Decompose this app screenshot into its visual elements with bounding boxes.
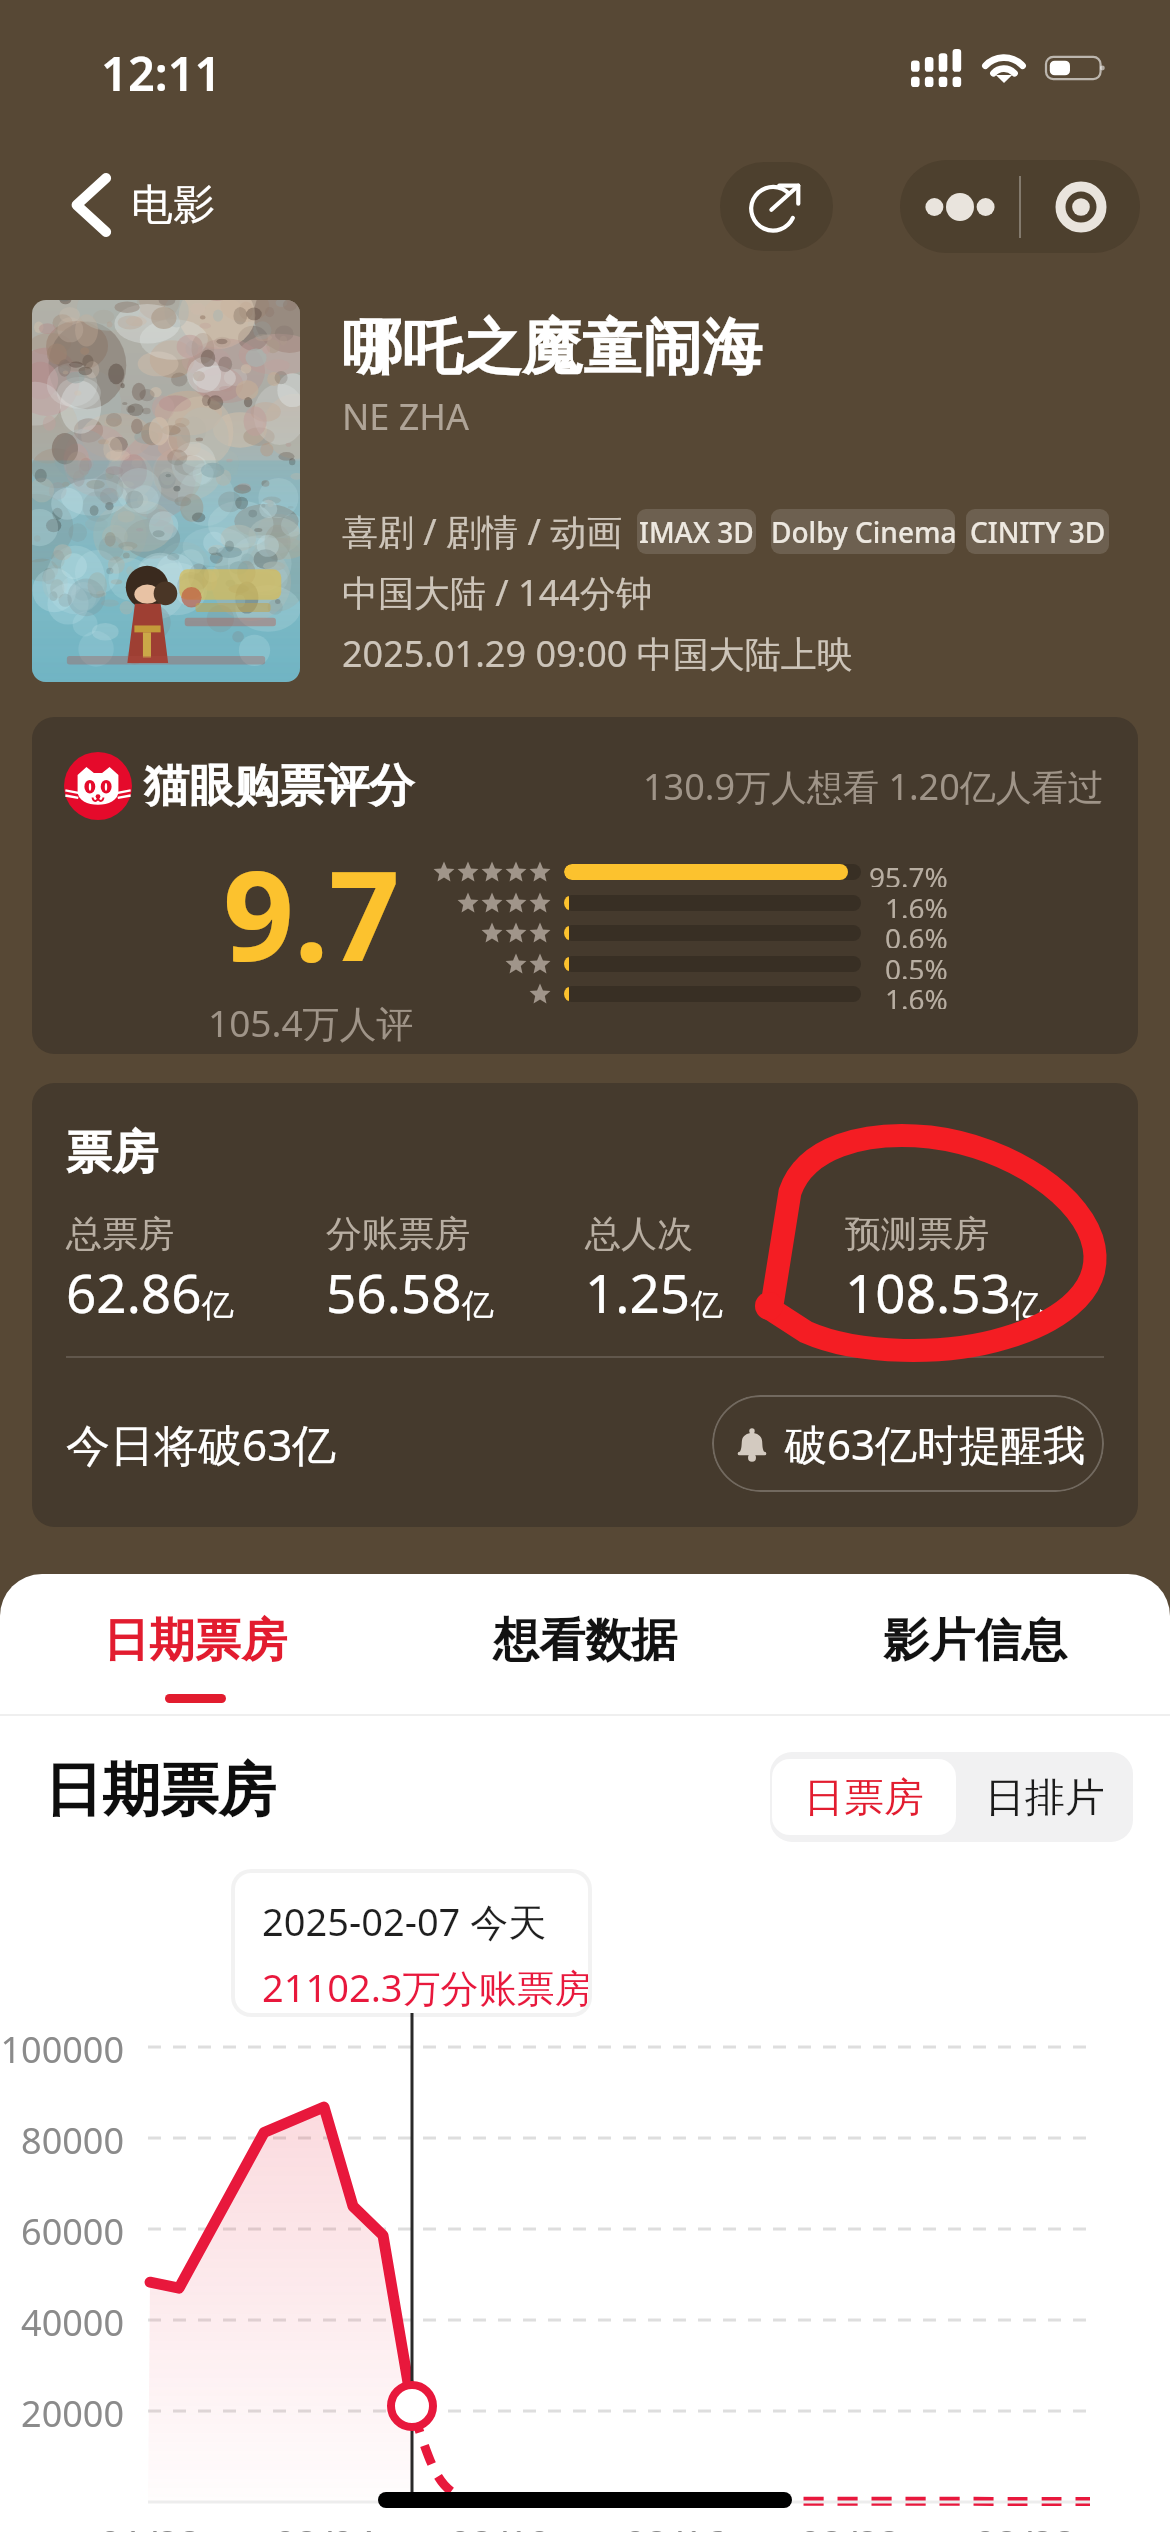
other: Back — [73, 175, 109, 235]
staticText: 日排片 — [985, 1772, 1105, 1822]
staticText: 日票房 — [804, 1772, 924, 1822]
staticText: 20000 — [0, 2389, 124, 2438]
staticText: 9.7 — [223, 828, 400, 997]
staticText: 日期票房 — [44, 1754, 276, 1827]
staticText: 破63亿时提醒我 — [785, 1415, 1086, 1472]
staticText: 总人次 — [585, 1211, 693, 1256]
button[interactable]: 日排片 — [956, 1759, 1133, 1835]
button[interactable]: More options — [900, 160, 1019, 253]
staticText: 1.6% — [885, 889, 948, 918]
staticText: 60000 — [0, 2207, 124, 2256]
staticText: 2025-02-07 今天 — [262, 1895, 547, 1947]
staticText: 95.7% — [869, 858, 948, 887]
staticText: 56.58 — [326, 1256, 462, 1328]
button[interactable]: Close mini program — [1021, 160, 1140, 253]
button[interactable]: 影片信息 — [780, 1574, 1170, 1714]
staticText: 亿 — [462, 1285, 494, 1325]
staticText: CINITY 3D — [970, 513, 1106, 551]
staticText: 总票房 — [66, 1211, 174, 1256]
staticText: 0.5% — [885, 950, 948, 979]
staticText: 130.9万人想看 1.20亿人看过 — [643, 762, 1104, 811]
staticText: 2025.01.29 09:00 中国大陆上映 — [342, 629, 853, 678]
staticText: Dolby Cinema — [771, 513, 955, 551]
staticText: NE ZHA — [342, 392, 470, 441]
staticText: 21102.3万分账票房 — [262, 1961, 588, 2013]
button[interactable]: 日票房 — [772, 1759, 956, 1835]
staticText: 100000 — [0, 2025, 124, 2074]
staticText: 分账票房 — [326, 1211, 470, 1256]
staticText: 62.86 — [66, 1256, 202, 1328]
staticText: 02/16 — [605, 2517, 745, 2532]
staticText: 1.25 — [585, 1256, 691, 1328]
staticText: 猫眼购票评分 — [144, 758, 414, 815]
button[interactable]: 日期票房 — [0, 1574, 390, 1714]
staticText: 喜剧 / 剧情 / 动画 — [342, 507, 623, 556]
staticText: 预测票房 — [845, 1211, 989, 1256]
button[interactable]: 破63亿时提醒我 — [712, 1395, 1104, 1492]
staticText: 日期票房 — [103, 1612, 287, 1670]
staticText: 01/28 — [80, 2517, 220, 2532]
staticText: 中国大陆 / 144分钟 — [342, 568, 652, 617]
staticText: 哪吒之魔童闹海 — [342, 310, 762, 386]
button[interactable]: Share — [720, 162, 833, 251]
staticText: 0.6% — [885, 919, 948, 948]
staticText: 12:11 — [101, 41, 222, 105]
staticText: 80000 — [0, 2116, 124, 2165]
staticText: 影片信息 — [883, 1612, 1067, 1670]
staticText: 亿 — [202, 1285, 234, 1325]
button[interactable]: Back — [65, 165, 223, 245]
staticText: 02/22 — [780, 2517, 920, 2532]
staticText: 亿 — [1011, 1285, 1043, 1325]
staticText: 105.4万人评 — [208, 997, 414, 1048]
staticText: 02/04 — [255, 2517, 395, 2532]
staticText: 今日将破63亿 — [66, 1414, 337, 1474]
staticText: 40000 — [0, 2298, 124, 2347]
button[interactable] — [32, 300, 300, 682]
staticText: 亿 — [691, 1285, 723, 1325]
staticText: 想看数据 — [493, 1612, 677, 1670]
staticText: IMAX 3D — [639, 513, 754, 551]
button[interactable]: 想看数据 — [390, 1574, 780, 1714]
button[interactable]: 猫眼购票评分 — [32, 717, 1138, 1054]
staticText: 108.53 — [845, 1256, 1011, 1328]
staticText: 02/28 — [955, 2517, 1095, 2532]
staticText: 票房 — [66, 1124, 158, 1182]
staticText: 电影 — [131, 179, 215, 232]
staticText: 1.6% — [885, 980, 948, 1009]
staticText: 02/10 — [430, 2517, 570, 2532]
